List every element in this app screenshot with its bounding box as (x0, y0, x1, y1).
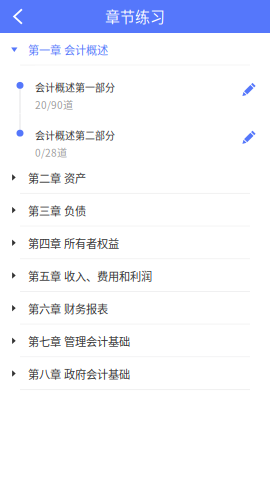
staticText: 第三章 负债 (28, 202, 86, 219)
button[interactable]: 第六章 财务报表 (0, 292, 270, 325)
button[interactable]: 会计概述第一部分 (0, 66, 270, 113)
staticText: 第五章 收入、费用和利润 (28, 268, 152, 284)
staticText: 第一章 会计概述 (28, 41, 108, 58)
staticText: 第四章 所有者权益 (28, 235, 119, 251)
button[interactable]: 第四章 所有者权益 (0, 227, 270, 259)
staticText: 20/90道 (35, 97, 73, 112)
button[interactable]: 第五章 收入、费用和利润 (0, 259, 270, 292)
button[interactable]: Back (0, 0, 36, 33)
staticText: 章节练习 (105, 5, 165, 27)
button[interactable]: 第二章 资产 (0, 161, 270, 194)
staticText: 第二章 资产 (28, 170, 86, 186)
button[interactable]: 第三章 负债 (0, 194, 270, 227)
staticText: 第八章 政府会计基础 (28, 366, 130, 382)
staticText: 会计概述第一部分 (35, 80, 115, 94)
button[interactable]: 第八章 政府会计基础 (0, 357, 270, 390)
button[interactable]: 会计概述第二部分 (0, 113, 270, 161)
staticText: 0/28道 (35, 145, 67, 160)
staticText: 第六章 财务报表 (28, 300, 108, 317)
staticText: 第七章 管理会计基础 (28, 333, 130, 349)
button[interactable]: 第七章 管理会计基础 (0, 325, 270, 357)
button[interactable]: 第一章 会计概述 (0, 33, 270, 66)
staticText: 会计概述第二部分 (35, 128, 115, 142)
